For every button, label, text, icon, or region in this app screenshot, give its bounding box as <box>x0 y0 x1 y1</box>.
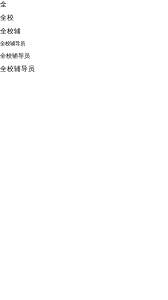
staticText: 全 <box>0 0 7 8</box>
staticText: 全校 <box>0 13 14 22</box>
staticText: 全校辅导员 <box>0 52 30 59</box>
staticText: 全校辅导员 <box>0 64 35 73</box>
staticText: 全校辅导员 <box>0 40 25 47</box>
staticText: 全校辅 <box>0 27 21 35</box>
